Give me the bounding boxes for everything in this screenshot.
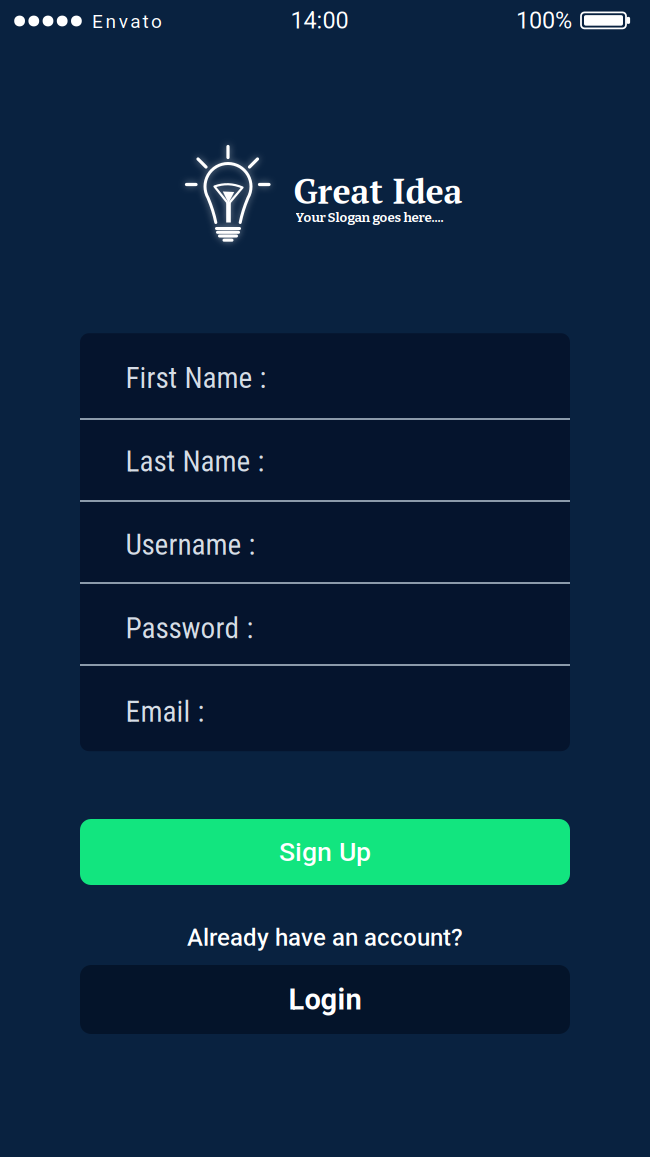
staticText: 14:00 [290,7,348,34]
staticText: Password : [125,611,253,645]
staticText: Great Idea [293,168,462,213]
staticText: First Name : [125,361,266,395]
button[interactable]: Username : [80,504,570,586]
staticText: Email : [125,694,204,729]
staticText: Your Slogan goes here.... [295,209,443,225]
staticText: 100% [516,7,572,34]
staticText: v [119,10,128,33]
staticText: Username : [125,528,255,562]
staticText: Already have an account? [187,923,463,951]
staticText: E [92,10,103,33]
staticText: n [105,10,116,33]
button[interactable]: Password : [80,587,570,669]
staticText: Sign Up [279,836,371,868]
staticText: o [151,10,162,33]
staticText: a [130,10,140,33]
button[interactable]: First Name : [80,337,570,419]
button[interactable]: Login [80,965,570,1034]
staticText: Login [288,982,361,1017]
button[interactable]: Sign Up [80,819,570,885]
staticText: t [143,10,149,33]
button[interactable]: Last Name : [80,420,570,502]
staticText: Last Name : [125,444,264,479]
button[interactable]: Email : [80,671,570,753]
